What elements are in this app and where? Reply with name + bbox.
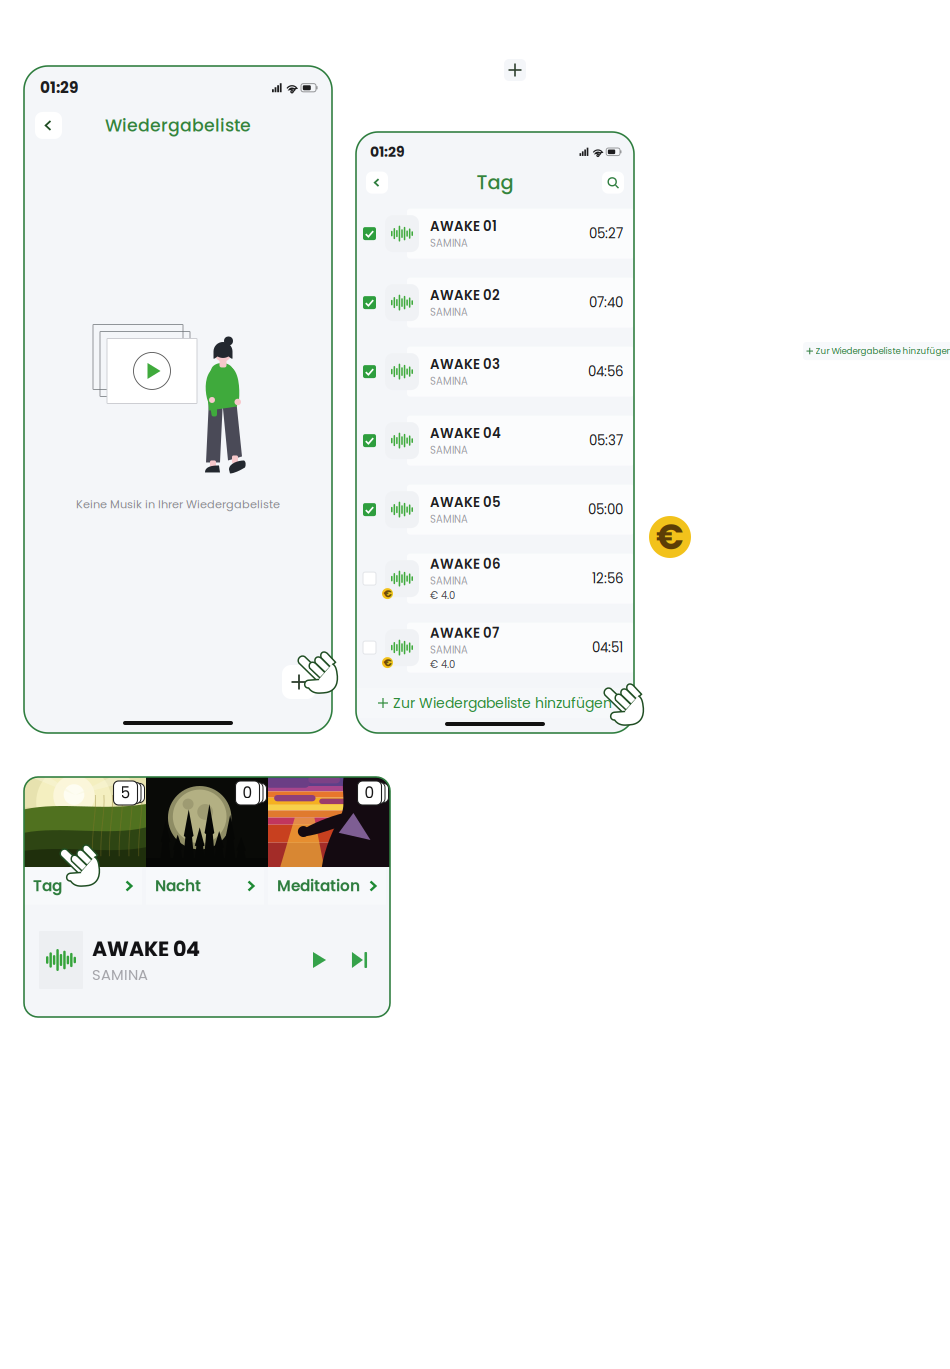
staticText: Tag bbox=[476, 169, 513, 196]
staticText: 01:29 bbox=[370, 142, 405, 162]
staticText: 05:27 bbox=[589, 224, 623, 243]
staticText: 01:29 bbox=[40, 77, 78, 98]
button[interactable]: Hinzufügen bbox=[282, 665, 316, 699]
button[interactable]: Zurück bbox=[366, 172, 388, 194]
staticText: 05:00 bbox=[588, 500, 623, 519]
staticText: AWAKE 06 bbox=[430, 555, 501, 573]
staticText: Zur Wiedergabeliste hinzufügen bbox=[393, 693, 612, 713]
staticText: AWAKE 04 bbox=[92, 935, 200, 964]
staticText: 12:56 bbox=[592, 569, 623, 588]
staticText: SAMINA bbox=[430, 305, 468, 319]
staticText: Keine Musik in Ihrer Wiedergabeliste bbox=[76, 496, 280, 512]
button[interactable]: 0 bbox=[146, 777, 268, 905]
button[interactable]: Nächster Titel bbox=[343, 943, 376, 977]
button[interactable]: 0 bbox=[268, 777, 390, 905]
button[interactable]: AWAKE 01 bbox=[356, 209, 634, 259]
button[interactable]: 5 bbox=[24, 777, 146, 905]
staticText: Nacht bbox=[155, 875, 201, 897]
staticText: 05:37 bbox=[589, 431, 623, 450]
staticText: AWAKE 04 bbox=[430, 424, 501, 443]
button[interactable]: AWAKE 04 bbox=[356, 416, 634, 466]
staticText: AWAKE 07 bbox=[430, 624, 499, 642]
staticText: SAMINA bbox=[430, 236, 468, 250]
staticText: SAMINA bbox=[430, 443, 468, 457]
staticText: Tag bbox=[33, 875, 62, 897]
staticText: € bbox=[656, 513, 684, 561]
staticText: 04:56 bbox=[588, 362, 623, 381]
staticText: AWAKE 01 bbox=[430, 217, 497, 236]
staticText: Meditation bbox=[277, 875, 360, 897]
button[interactable]: Zurück bbox=[35, 112, 62, 139]
staticText: AWAKE 05 bbox=[430, 493, 501, 512]
staticText: 0 bbox=[364, 782, 374, 804]
staticText: Wiedergabeliste bbox=[105, 113, 251, 138]
staticText: 04:51 bbox=[592, 638, 623, 657]
staticText: 5 bbox=[120, 782, 130, 804]
button[interactable]: AWAKE 05 bbox=[356, 485, 634, 535]
staticText: € bbox=[383, 655, 391, 670]
staticText: € 4.0 bbox=[430, 657, 455, 671]
staticText: AWAKE 03 bbox=[430, 355, 500, 374]
button[interactable]: AWAKE 07 bbox=[356, 623, 634, 673]
staticText: SAMINA bbox=[430, 512, 468, 526]
staticText: 0 bbox=[242, 782, 252, 804]
staticText: AWAKE 02 bbox=[430, 286, 500, 305]
button[interactable]: Zur Wiedergabeliste hinzufügen bbox=[356, 688, 634, 718]
staticText: Zur Wiedergabeliste hinzufügen bbox=[815, 345, 950, 357]
button[interactable]: AWAKE 03 bbox=[356, 347, 634, 397]
staticText: SAMINA bbox=[430, 574, 468, 588]
staticText: SAMINA bbox=[92, 965, 148, 985]
button[interactable]: AWAKE 06 bbox=[356, 554, 634, 604]
button[interactable]: Suchen bbox=[602, 172, 624, 194]
button[interactable]: AWAKE 02 bbox=[356, 278, 634, 328]
staticText: SAMINA bbox=[430, 643, 468, 657]
staticText: SAMINA bbox=[430, 374, 468, 388]
staticText: € 4.0 bbox=[430, 588, 455, 602]
staticText: € bbox=[383, 586, 391, 601]
staticText: 07:40 bbox=[589, 293, 623, 312]
button[interactable]: Abspielen bbox=[304, 943, 335, 977]
